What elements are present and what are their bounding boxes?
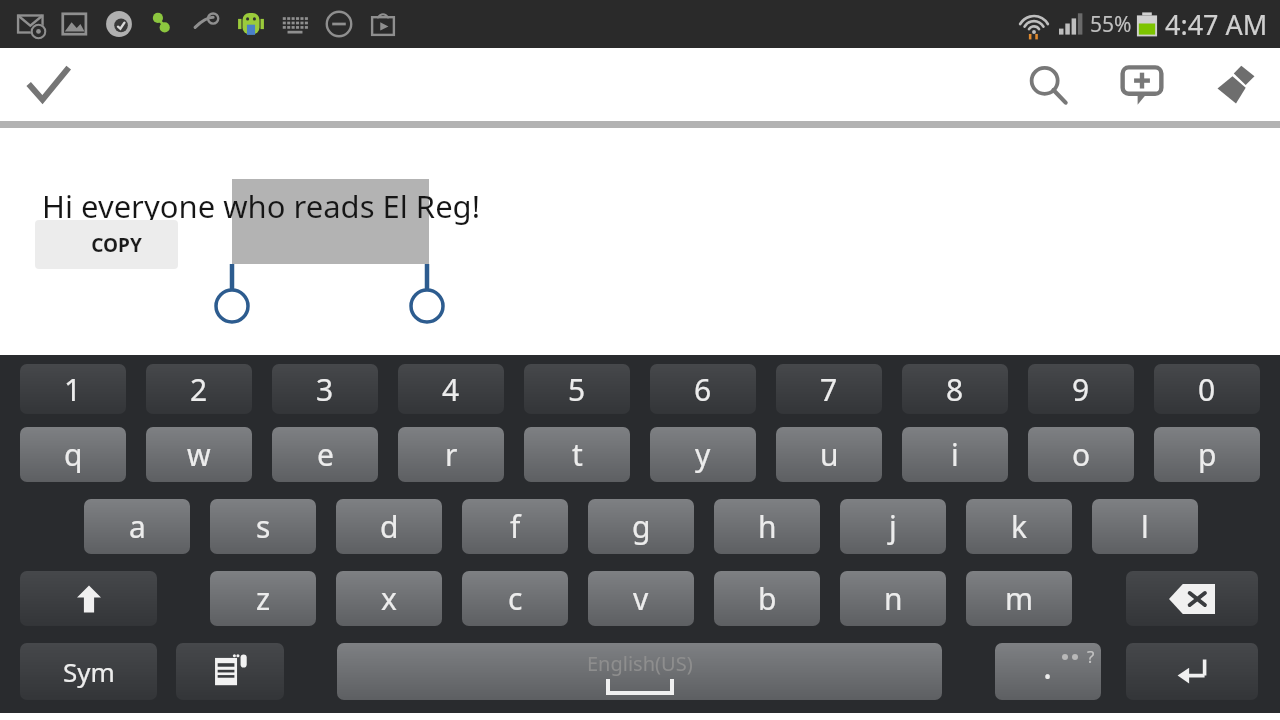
staticText: b [758, 578, 777, 619]
staticText: g [632, 506, 651, 547]
staticText: 7 [820, 369, 838, 410]
staticText: f [510, 506, 521, 547]
staticText: 4:47 AM [1165, 6, 1268, 43]
button[interactable]: w [146, 427, 252, 482]
button[interactable]: . [995, 643, 1101, 700]
button[interactable]: 2 [146, 364, 252, 414]
button[interactable]: 8 [902, 364, 1008, 414]
button[interactable]: g [588, 499, 694, 554]
staticText: Hi everyone who reads El Reg! [42, 185, 481, 227]
button[interactable]: b [714, 571, 820, 626]
staticText: o [1072, 434, 1091, 475]
staticText: u [820, 434, 839, 475]
staticText: k [1011, 506, 1028, 547]
staticText: 0 [1198, 369, 1216, 410]
button[interactable]: d [336, 499, 442, 554]
button[interactable]: Brush [1200, 49, 1272, 121]
staticText: e [317, 434, 334, 475]
button[interactable]: Shift [20, 571, 157, 626]
button[interactable]: h [714, 499, 820, 554]
staticText: z [256, 578, 271, 619]
staticText: COPY [91, 232, 142, 258]
button[interactable]: n [840, 571, 946, 626]
button[interactable]: c [462, 571, 568, 626]
staticText: 4 [442, 369, 460, 410]
button[interactable]: z [210, 571, 316, 626]
staticText: y [695, 434, 711, 475]
staticText: s [256, 506, 271, 547]
staticText: c [508, 578, 523, 619]
button[interactable]: Backspace [1126, 571, 1258, 626]
button[interactable]: j [840, 499, 946, 554]
staticText: 1 [64, 369, 82, 410]
staticText: 55% [1090, 10, 1132, 39]
button[interactable]: r [398, 427, 504, 482]
staticText: r [445, 434, 458, 475]
button[interactable]: y [650, 427, 756, 482]
staticText: 5 [568, 369, 586, 410]
staticText: j [889, 506, 897, 547]
staticText: 6 [694, 369, 712, 410]
button[interactable]: 0 [1154, 364, 1260, 414]
staticText: . [1043, 643, 1053, 689]
button[interactable]: Search [1012, 49, 1084, 121]
button[interactable]: Clipboard and voice input [176, 643, 284, 700]
staticText: w [187, 434, 211, 475]
staticText: 9 [1072, 369, 1090, 410]
staticText: Sym [63, 654, 115, 689]
button[interactable]: 5 [524, 364, 630, 414]
button[interactable]: a [84, 499, 190, 554]
button[interactable]: Enter [1126, 643, 1258, 700]
button[interactable]: p [1154, 427, 1260, 482]
button[interactable]: 3 [272, 364, 378, 414]
button[interactable]: s [210, 499, 316, 554]
staticText: m [1005, 578, 1034, 619]
staticText: 3 [316, 369, 334, 410]
button[interactable]: l [1092, 499, 1198, 554]
staticText: d [380, 506, 399, 547]
button[interactable]: COPY [35, 220, 178, 269]
button[interactable]: Done [10, 48, 86, 121]
button[interactable]: e [272, 427, 378, 482]
button[interactable]: 9 [1028, 364, 1134, 414]
button[interactable]: v [588, 571, 694, 626]
staticText: p [1198, 434, 1217, 475]
button[interactable]: 6 [650, 364, 756, 414]
staticText: x [381, 578, 397, 619]
staticText: h [758, 506, 777, 547]
staticText: English(US) [587, 650, 693, 677]
button[interactable]: f [462, 499, 568, 554]
button[interactable]: 4 [398, 364, 504, 414]
staticText: ? [1087, 645, 1095, 668]
staticText: n [884, 578, 903, 619]
button[interactable]: 1 [20, 364, 126, 414]
button[interactable]: u [776, 427, 882, 482]
button[interactable]: English(US) [337, 643, 942, 700]
staticText: l [1141, 506, 1149, 547]
staticText: a [129, 506, 146, 547]
button[interactable]: Sym [20, 643, 157, 700]
staticText: 2 [190, 369, 208, 410]
button[interactable]: x [336, 571, 442, 626]
staticText: v [633, 578, 649, 619]
button[interactable]: k [966, 499, 1072, 554]
staticText: q [64, 434, 83, 475]
staticText: i [951, 434, 959, 475]
staticText: t [572, 434, 583, 475]
button[interactable]: 7 [776, 364, 882, 414]
button[interactable]: m [966, 571, 1072, 626]
button[interactable]: q [20, 427, 126, 482]
button[interactable]: i [902, 427, 1008, 482]
button[interactable]: t [524, 427, 630, 482]
button[interactable]: Add note [1106, 49, 1178, 121]
staticText: 8 [946, 369, 964, 410]
button[interactable]: o [1028, 427, 1134, 482]
